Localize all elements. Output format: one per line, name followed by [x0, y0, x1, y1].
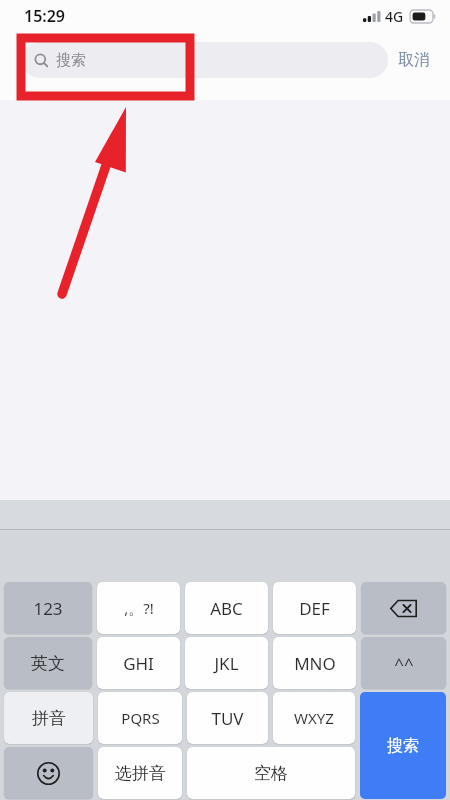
staticText: PQRS	[121, 708, 160, 728]
button[interactable]: Emoji	[4, 747, 93, 799]
staticText: JKL	[214, 652, 239, 675]
button[interactable]: 空格	[187, 747, 355, 799]
staticText: 搜索	[56, 51, 86, 70]
staticText: WXYZ	[294, 708, 334, 728]
staticText: ^^	[394, 652, 414, 675]
button[interactable]: 搜索	[360, 692, 446, 799]
staticText: 15:29	[24, 5, 66, 27]
staticText: 选拼音	[115, 763, 166, 784]
button[interactable]: 取消	[388, 44, 440, 76]
button[interactable]: 123	[4, 582, 92, 634]
button[interactable]: GHI	[97, 637, 180, 689]
staticText: 英文	[31, 653, 65, 674]
button[interactable]: 英文	[4, 637, 92, 689]
button[interactable]: PQRS	[98, 692, 182, 744]
staticText: 4G	[385, 7, 404, 26]
staticText: ,。?!	[124, 598, 154, 618]
button[interactable]: ,。?!	[97, 582, 180, 634]
staticText: 123	[33, 597, 63, 620]
button[interactable]: ABC	[185, 582, 268, 634]
button[interactable]: 搜索	[22, 42, 388, 78]
staticText: ABC	[210, 597, 243, 620]
staticText: DEF	[299, 597, 330, 620]
button[interactable]: Backspace	[361, 582, 446, 634]
staticText: MNO	[294, 652, 336, 675]
staticText: GHI	[123, 652, 154, 675]
staticText: 搜索	[387, 736, 419, 756]
button[interactable]: 选拼音	[98, 747, 182, 799]
button[interactable]: MNO	[273, 637, 356, 689]
button[interactable]: WXYZ	[273, 692, 355, 744]
staticText: 取消	[398, 50, 430, 70]
button[interactable]: TUV	[187, 692, 268, 744]
button[interactable]: ^^	[361, 637, 446, 689]
staticText: 拼音	[32, 708, 66, 729]
button[interactable]: 拼音	[4, 692, 93, 744]
button[interactable]: JKL	[185, 637, 268, 689]
staticText: 空格	[254, 763, 288, 784]
staticText: TUV	[211, 707, 244, 730]
button[interactable]: DEF	[273, 582, 356, 634]
